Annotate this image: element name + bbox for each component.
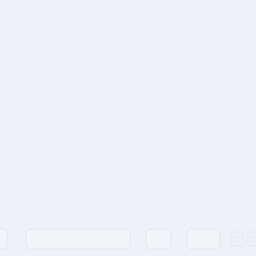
button[interactable]: Emoji bbox=[230, 232, 243, 246]
button[interactable]: Dictation bbox=[246, 232, 256, 246]
button[interactable]: Return bbox=[146, 229, 171, 249]
button[interactable]: Done bbox=[187, 229, 220, 249]
button[interactable]: Shift bbox=[0, 229, 7, 249]
button[interactable]: Space bbox=[26, 229, 130, 249]
